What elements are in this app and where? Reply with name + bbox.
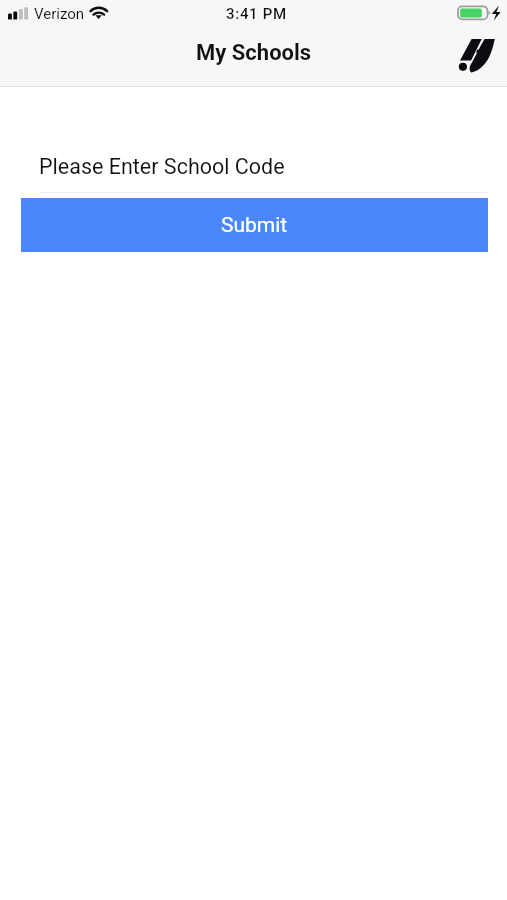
staticText: My Schools [196,40,312,66]
button[interactable]: Submit [21,198,488,252]
staticText: Please Enter School Code [39,154,285,179]
button[interactable]: Please Enter School Code [39,150,488,193]
staticText: Verizon [34,5,85,23]
staticText: Submit [221,213,288,238]
button[interactable]: App logo [457,35,497,75]
staticText: 3:41 PM [226,5,287,23]
